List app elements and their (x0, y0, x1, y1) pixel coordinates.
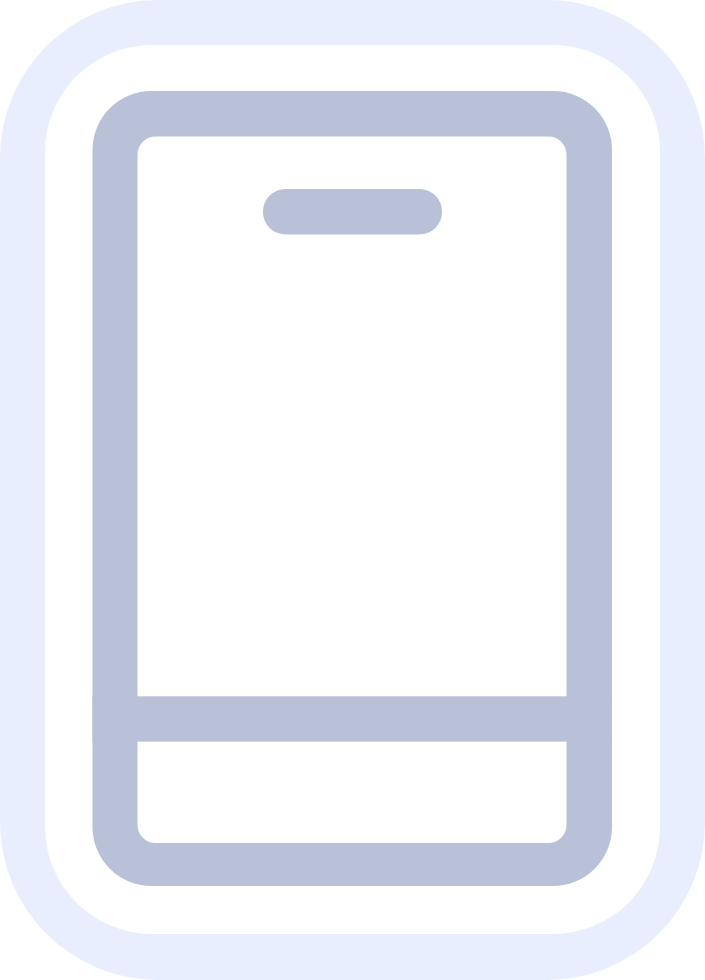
button[interactable]: Smartphone icon (0, 0, 705, 980)
